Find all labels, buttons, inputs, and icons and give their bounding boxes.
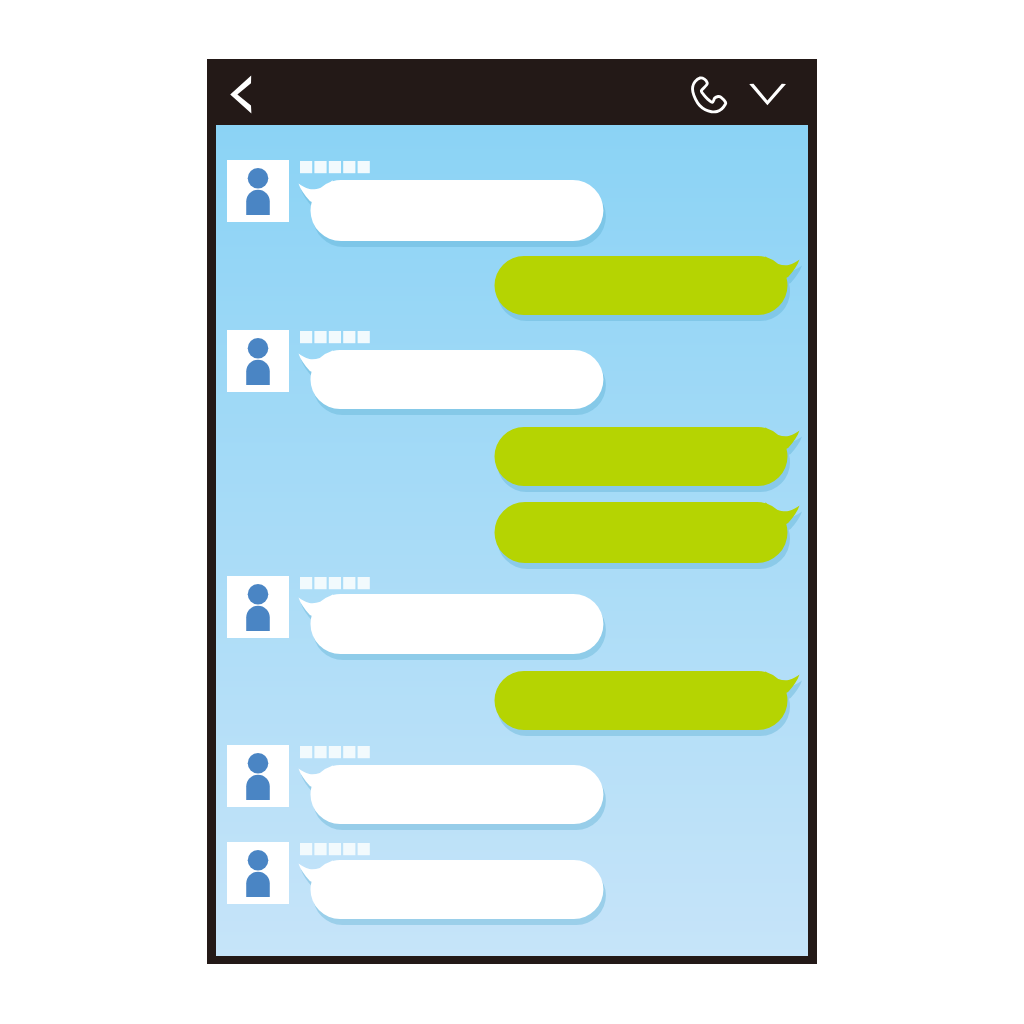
button[interactable]: Contact photo xyxy=(227,576,289,638)
button[interactable]: Contact photo xyxy=(227,330,289,392)
button[interactable]: Contact photo xyxy=(227,745,289,807)
button[interactable]: Received message 8 xyxy=(299,765,604,824)
button[interactable]: Received message 1 xyxy=(299,180,604,241)
button[interactable]: Contact photo xyxy=(227,842,289,904)
button[interactable]: Received message 3 xyxy=(299,350,604,409)
button[interactable]: Received message 9 xyxy=(299,860,604,919)
button[interactable]: Sent message 4 xyxy=(495,427,800,486)
button[interactable]: Sent message 2 xyxy=(495,256,800,315)
button[interactable]: Contact photo xyxy=(227,160,289,222)
button[interactable]: Received message 6 xyxy=(299,594,604,654)
button[interactable]: Show more xyxy=(744,66,796,120)
button[interactable]: Back xyxy=(222,64,278,120)
button[interactable]: Call xyxy=(686,66,738,120)
button[interactable]: Sent message 5 xyxy=(495,502,800,563)
button[interactable]: Sent message 7 xyxy=(495,671,800,730)
